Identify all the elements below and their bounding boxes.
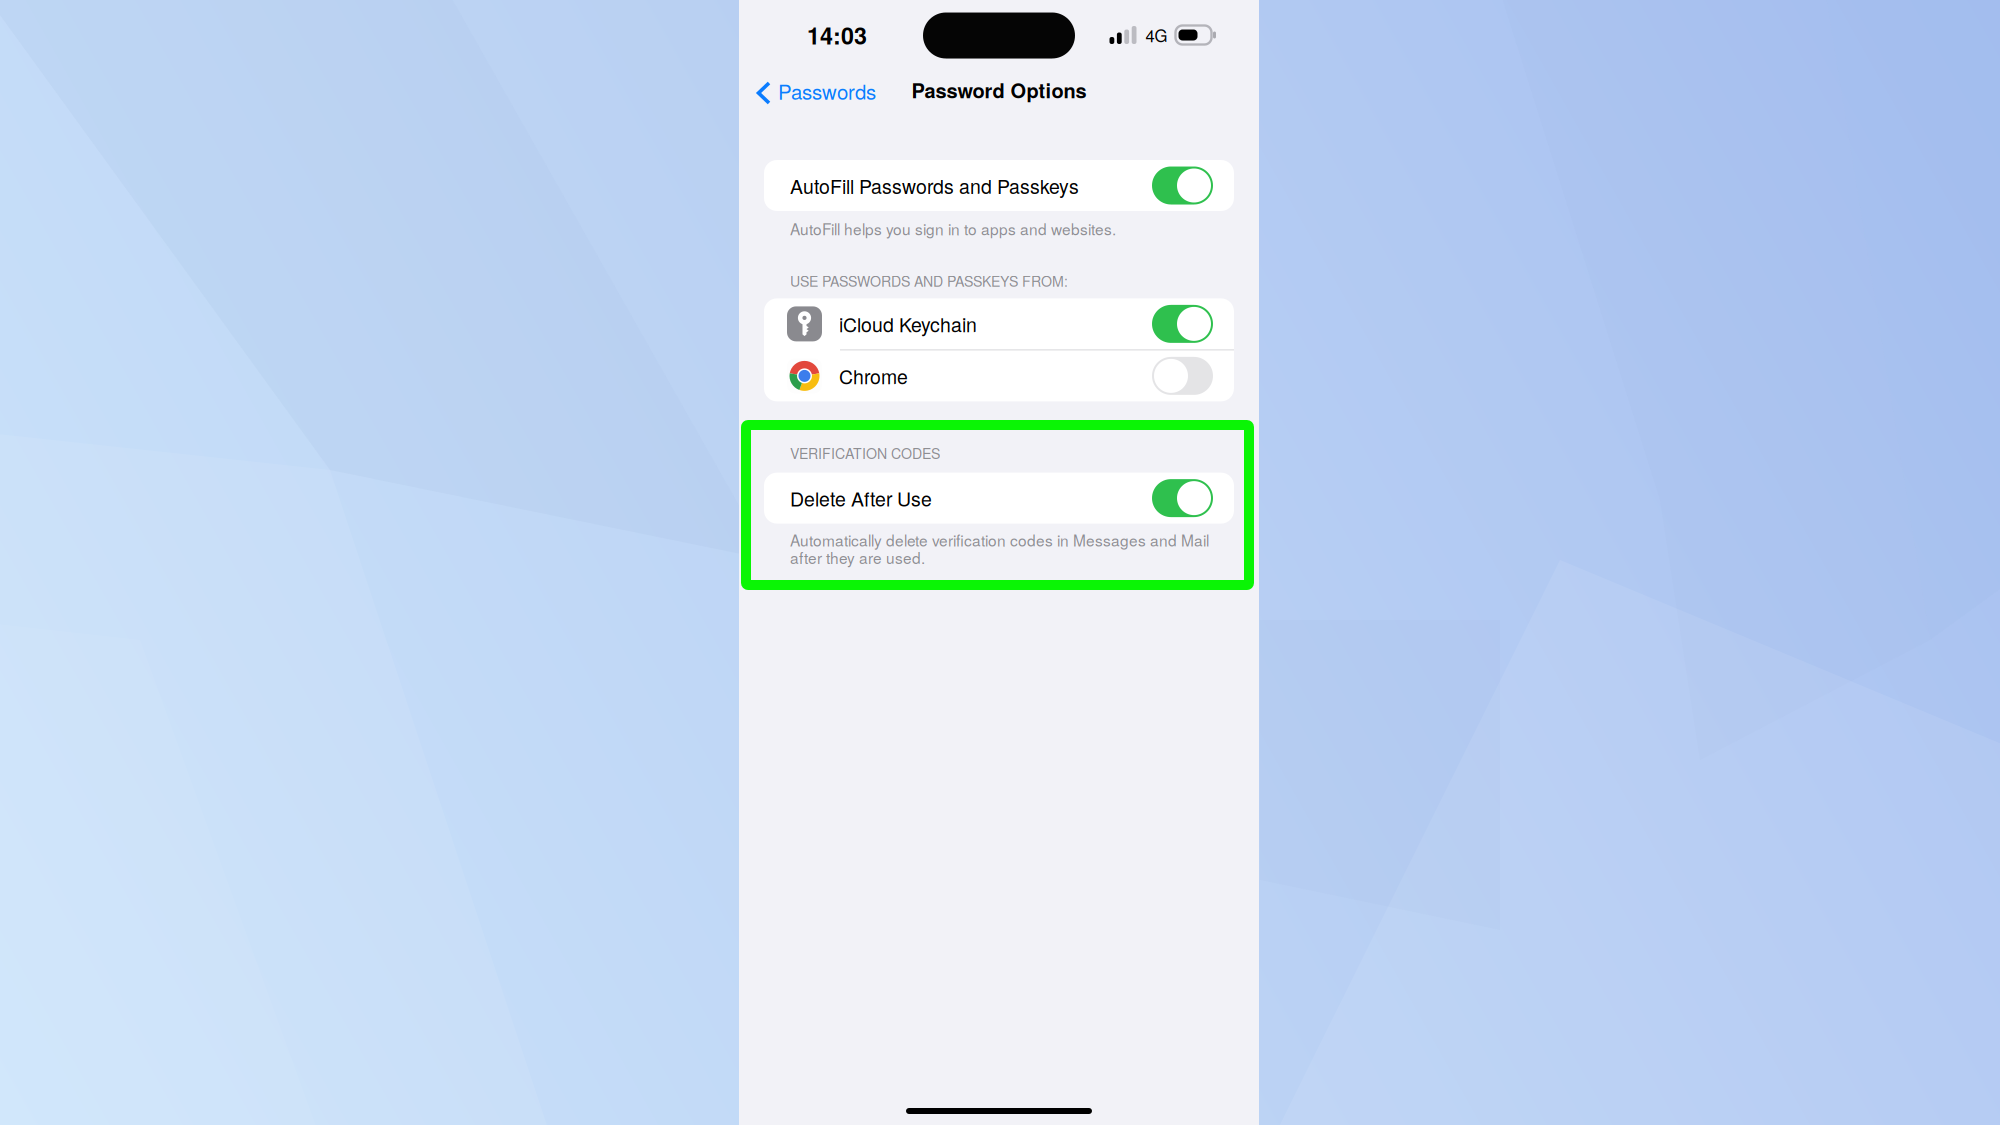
staticText: Passwords bbox=[778, 76, 876, 106]
staticText: Automatically delete verification codes … bbox=[790, 529, 1209, 568]
button[interactable]: On bbox=[1152, 166, 1213, 204]
button[interactable]: Delete After Use bbox=[764, 473, 1234, 524]
staticText: Delete After Use bbox=[790, 484, 932, 512]
staticText: 14:03 bbox=[807, 18, 867, 52]
staticText: 4G bbox=[1145, 23, 1167, 47]
staticText: VERIFICATION CODES bbox=[790, 443, 940, 463]
staticText: Password Options bbox=[911, 76, 1086, 104]
staticText: iCloud Keychain bbox=[839, 310, 977, 338]
button[interactable]: Chrome bbox=[764, 350, 1234, 401]
staticText: AutoFill helps you sign in to apps and w… bbox=[790, 217, 1116, 240]
button[interactable]: AutoFill Passwords and Passkeys bbox=[764, 160, 1234, 211]
button[interactable]: On bbox=[1152, 305, 1213, 343]
staticText: AutoFill Passwords and Passkeys bbox=[790, 172, 1079, 199]
staticText: USE PASSWORDS AND PASSKEYS FROM: bbox=[790, 271, 1068, 291]
button[interactable]: iCloud Keychain bbox=[764, 298, 1234, 349]
staticText: Chrome bbox=[839, 362, 908, 390]
button[interactable]: On bbox=[1152, 479, 1213, 517]
button[interactable]: Off bbox=[1152, 357, 1213, 395]
button[interactable]: Passwords bbox=[756, 70, 886, 116]
